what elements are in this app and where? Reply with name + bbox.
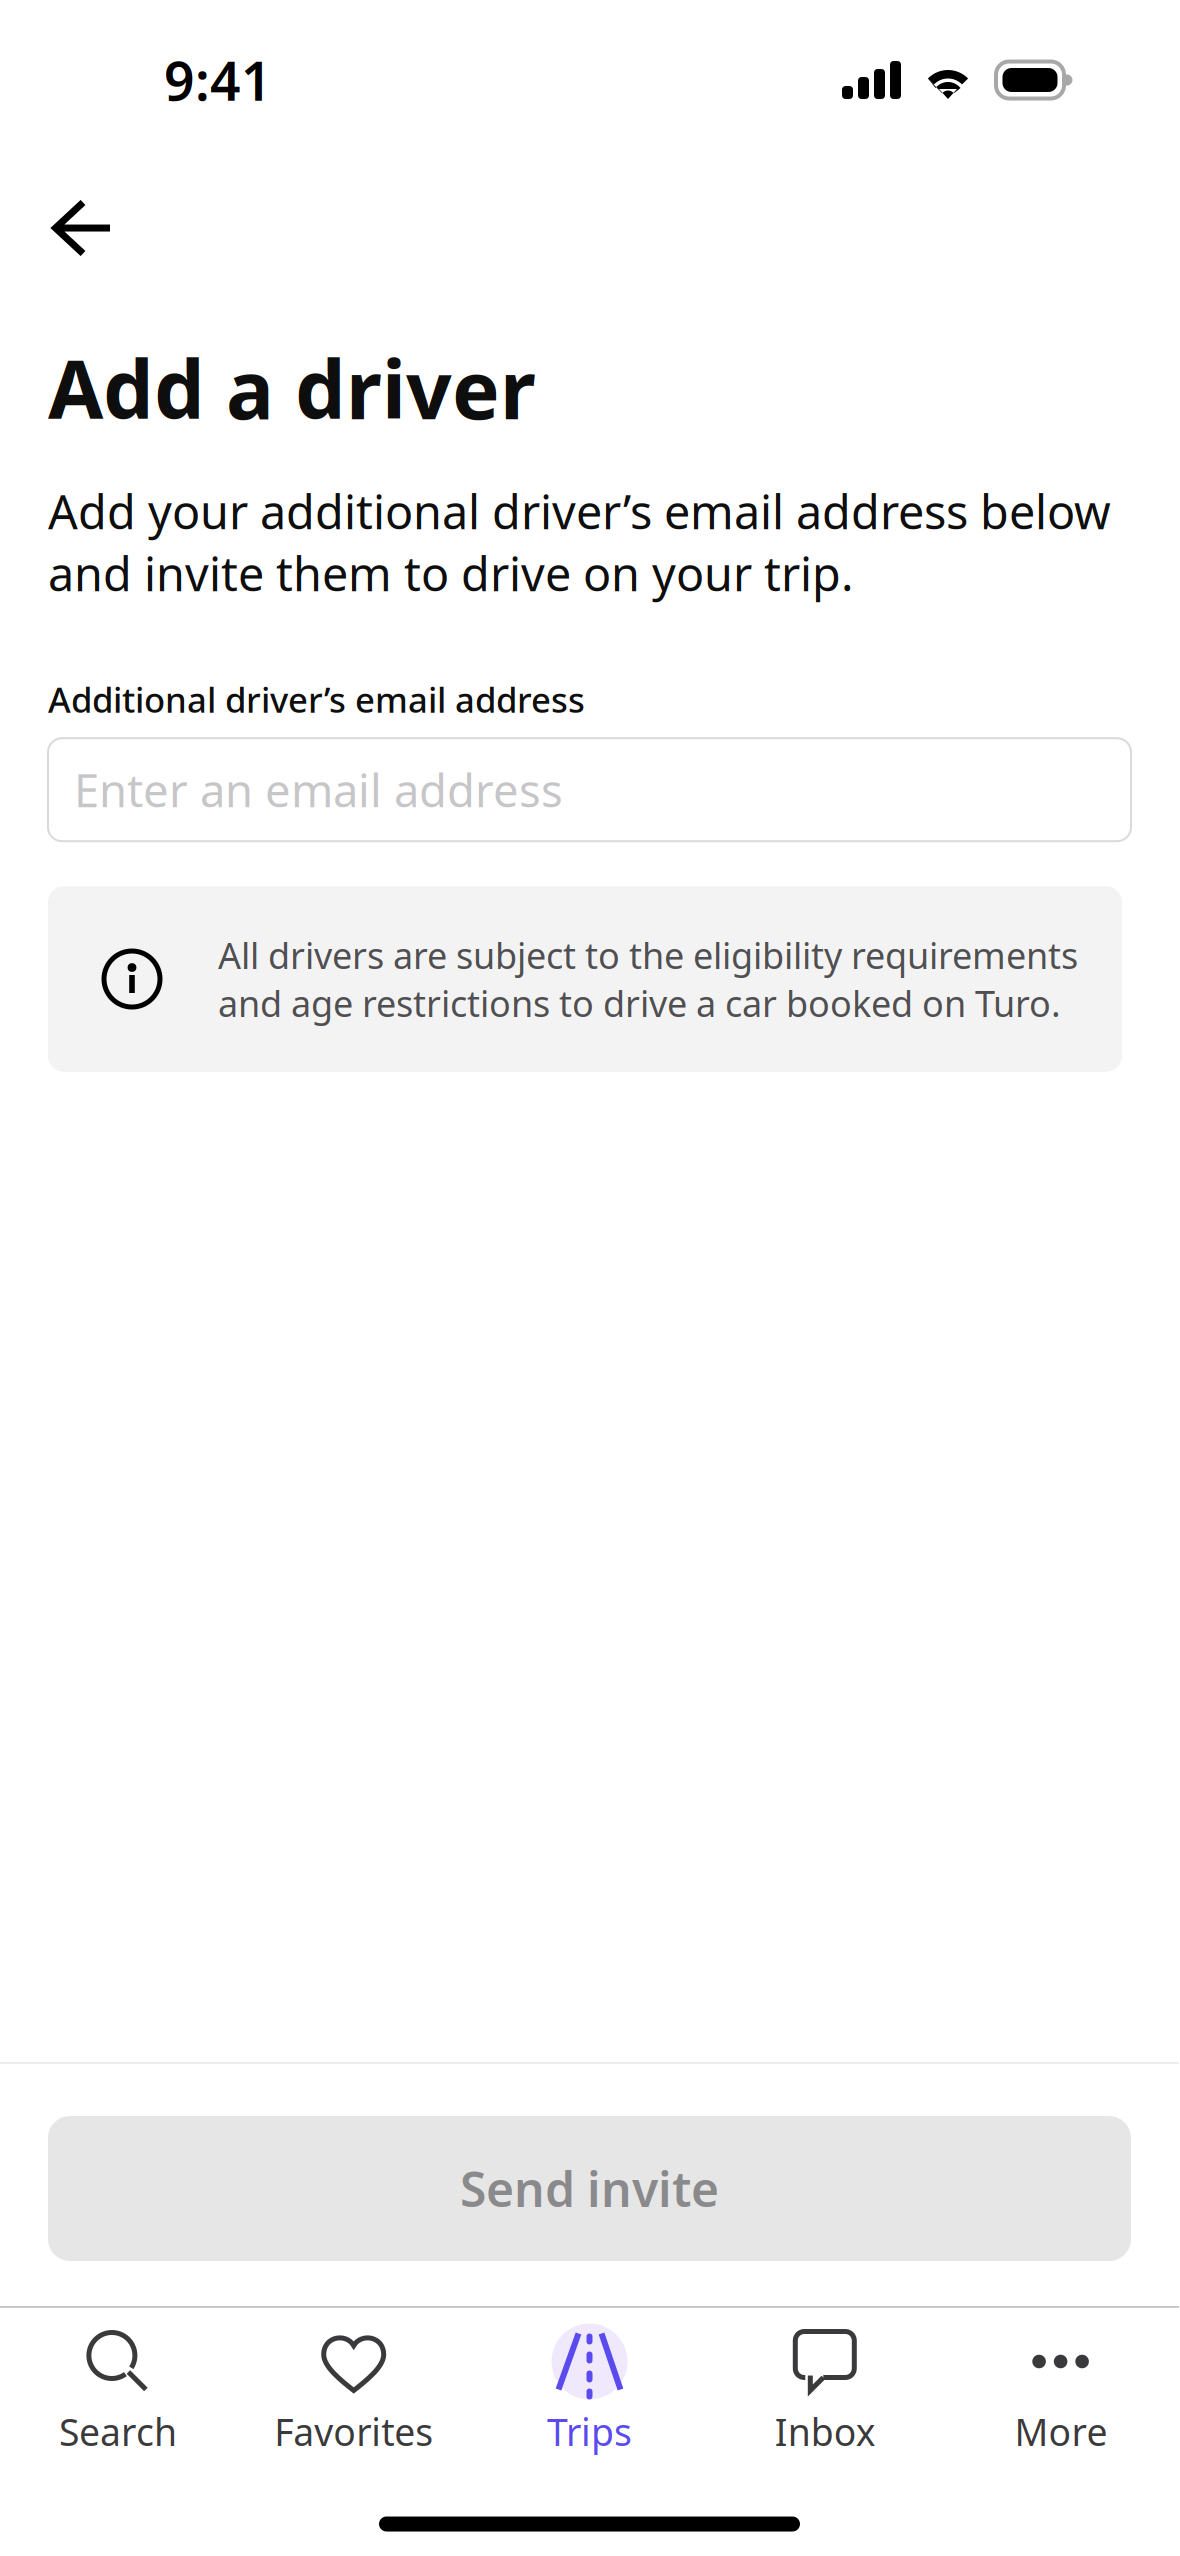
staticText: Add your additional driver’s email addre… bbox=[48, 480, 1111, 604]
button[interactable]: Send invite bbox=[48, 2116, 1131, 2261]
staticText: Search bbox=[59, 2407, 177, 2456]
staticText: Inbox bbox=[775, 2407, 876, 2456]
staticText: Trips bbox=[547, 2407, 632, 2456]
staticText: 9:41 bbox=[164, 45, 272, 115]
staticText: Favorites bbox=[274, 2407, 433, 2456]
staticText: Enter an email address bbox=[74, 760, 563, 820]
button[interactable]: Search bbox=[0, 2309, 236, 2464]
staticText: Add a driver bbox=[48, 335, 536, 441]
button[interactable]: More bbox=[943, 2309, 1179, 2464]
staticText: All drivers are subject to the eligibili… bbox=[218, 931, 1078, 1027]
button[interactable]: Favorites bbox=[236, 2309, 472, 2464]
button[interactable]: Trips bbox=[472, 2309, 707, 2464]
staticText: Send invite bbox=[460, 2157, 719, 2220]
button[interactable]: Inbox bbox=[707, 2309, 943, 2464]
button[interactable]: Back bbox=[0, 160, 148, 270]
staticText: More bbox=[1015, 2407, 1108, 2456]
staticText: Additional driver’s email address bbox=[48, 676, 585, 722]
